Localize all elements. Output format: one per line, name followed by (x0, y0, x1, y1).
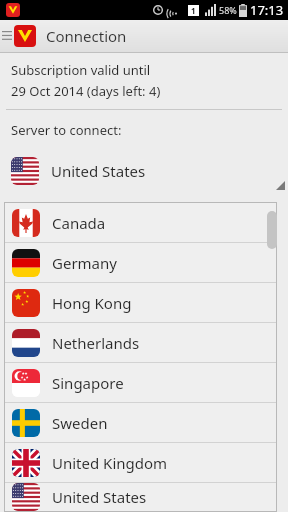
staticText: 1 (191, 5, 196, 16)
button[interactable]: Singapore (5, 363, 276, 402)
staticText: United States (51, 161, 146, 181)
staticText: Sweden (52, 413, 108, 433)
button[interactable]: Sweden (5, 403, 276, 442)
staticText: 29 Oct 2014 (days left: 4) (11, 82, 161, 100)
staticText: 58% (219, 4, 237, 16)
staticText: Subscription valid until (11, 61, 151, 79)
staticText: Server to connect: (11, 121, 122, 139)
button[interactable]: Germany (5, 243, 276, 282)
staticText: Connection (46, 26, 127, 46)
staticText: 17:13 (250, 1, 284, 19)
button[interactable]: United Kingdom (5, 443, 276, 482)
staticText: Netherlands (52, 333, 140, 353)
staticText: Germany (52, 253, 117, 273)
staticText: United States (52, 487, 147, 507)
staticText: Singapore (52, 373, 124, 393)
staticText: United Kingdom (52, 453, 168, 473)
staticText: Canada (52, 213, 106, 233)
button[interactable]: Menu (0, 20, 14, 52)
button[interactable]: United States (0, 150, 288, 192)
button[interactable]: Canada (5, 203, 276, 242)
button[interactable]: Hong Kong (5, 283, 276, 322)
staticText: Hong Kong (52, 293, 132, 313)
button[interactable]: Netherlands (5, 323, 276, 362)
button[interactable]: United States (5, 483, 276, 511)
